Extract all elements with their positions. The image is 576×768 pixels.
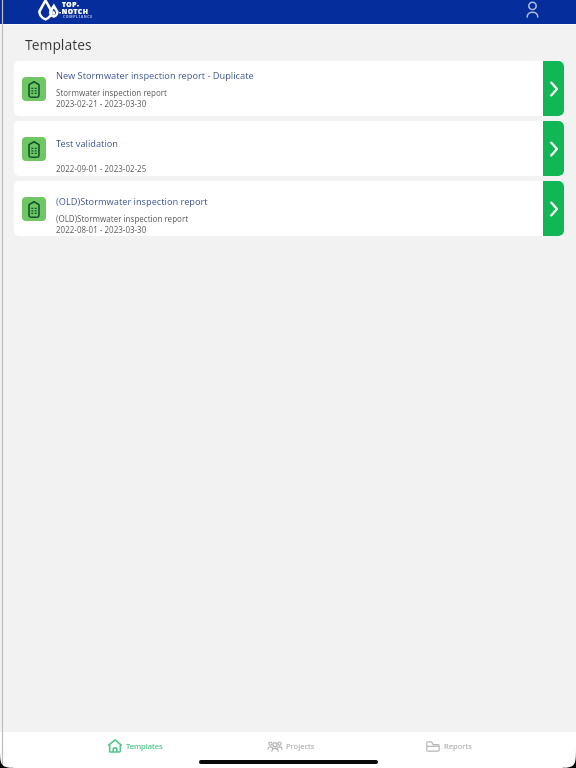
staticText: (OLD)Stormwater inspection report — [56, 213, 189, 224]
button[interactable]: Reports — [418, 735, 480, 757]
staticText: Reports — [444, 741, 472, 751]
staticText: (OLD)Stormwater inspection report — [56, 195, 208, 208]
staticText: -NOTCH — [59, 7, 89, 16]
button[interactable]: Projects — [260, 735, 323, 757]
staticText: 2023-02-21 - 2023-03-30 — [56, 98, 147, 109]
button[interactable]: Test validation — [14, 121, 564, 176]
staticText: Templates — [25, 35, 92, 54]
button[interactable]: Open template — [543, 181, 564, 236]
staticText: 2022-09-01 - 2023-02-25 — [56, 163, 147, 174]
staticText: COMPLIANCE — [63, 14, 93, 19]
staticText: Templates — [126, 741, 163, 751]
button[interactable]: New Stormwater inspection report - Dupli… — [14, 61, 564, 116]
staticText: Test validation — [56, 137, 119, 150]
staticText: Stormwater inspection report — [56, 87, 167, 98]
staticText: Projects — [286, 741, 315, 751]
button[interactable]: Open template — [543, 121, 564, 176]
button[interactable]: Templates — [100, 735, 171, 757]
staticText: 2022-08-01 - 2023-03-30 — [56, 224, 147, 235]
staticText: TOP- — [62, 0, 80, 9]
button[interactable]: (OLD)Stormwater inspection report — [14, 181, 564, 236]
button[interactable]: Open template — [543, 61, 564, 116]
staticText: New Stormwater inspection report - Dupli… — [56, 69, 254, 82]
button[interactable]: Account — [524, 1, 540, 17]
